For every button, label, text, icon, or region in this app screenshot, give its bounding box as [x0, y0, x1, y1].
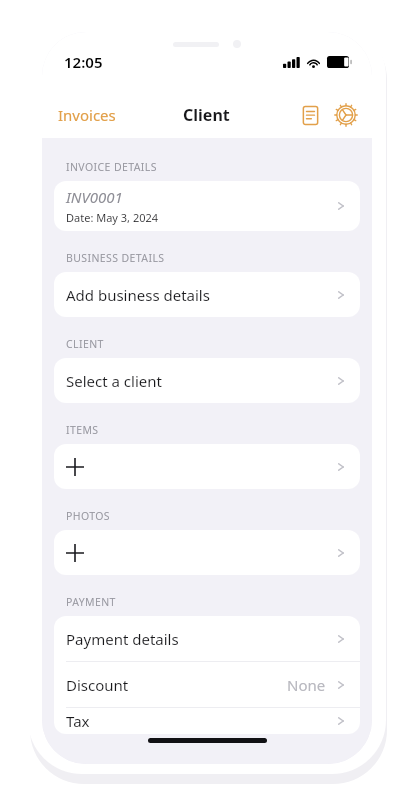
staticText: Date: May 3, 2024: [66, 210, 159, 225]
staticText: Client: [183, 104, 230, 126]
button[interactable]: Payment details: [54, 616, 360, 661]
button[interactable]: Settings: [328, 97, 364, 133]
staticText: INV0001: [66, 187, 123, 207]
staticText: BUSINESS DETAILS: [66, 251, 165, 265]
staticText: ITEMS: [66, 423, 99, 437]
staticText: PAYMENT: [66, 595, 116, 609]
button[interactable]: Discount: [54, 662, 360, 707]
staticText: None: [287, 675, 326, 695]
button[interactable]: Select a client: [54, 358, 360, 403]
staticText: PHOTOS: [66, 509, 111, 523]
staticText: Select a client: [66, 371, 162, 391]
button[interactable]: INV0001: [54, 181, 360, 231]
staticText: CLIENT: [66, 337, 104, 351]
button[interactable]: Add business details: [54, 272, 360, 317]
staticText: INVOICE DETAILS: [66, 160, 157, 174]
staticText: Invoices: [58, 105, 116, 125]
staticText: Tax: [66, 711, 90, 731]
staticText: 12:05: [64, 52, 103, 72]
staticText: Add business details: [66, 285, 210, 305]
button[interactable]: Invoice document: [292, 97, 328, 133]
button[interactable]: Add: [54, 444, 360, 489]
staticText: Payment details: [66, 629, 179, 649]
staticText: Discount: [66, 675, 129, 695]
button[interactable]: Invoices: [52, 101, 122, 129]
button[interactable]: Add: [54, 530, 360, 575]
button[interactable]: Tax: [54, 708, 360, 734]
